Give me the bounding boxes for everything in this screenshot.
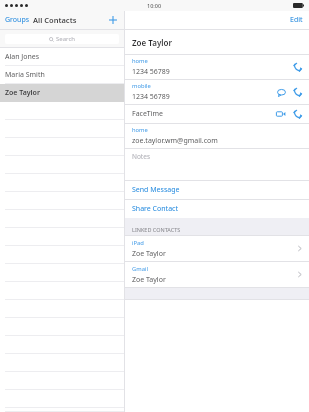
button[interactable]: Add contact (102, 14, 124, 26)
staticText: Zoe Taylor (132, 37, 172, 48)
staticText: Alan Jones (5, 52, 40, 62)
staticText: 10:00 (147, 2, 162, 9)
staticText: Search (56, 35, 75, 43)
button[interactable]: home (125, 124, 309, 148)
button[interactable]: Maria Smith (0, 66, 124, 84)
staticText: Zoe Taylor (5, 88, 40, 98)
staticText: Share Contact (132, 204, 178, 214)
button[interactable]: Search (5, 34, 119, 44)
staticText: Notes (132, 152, 150, 161)
button[interactable]: Share Contact (125, 200, 309, 218)
staticText: mobile (132, 82, 151, 90)
button[interactable]: Gmail (125, 262, 309, 287)
staticText: Send Message (132, 185, 180, 195)
button[interactable]: Call (292, 109, 302, 119)
staticText: FaceTime (132, 109, 164, 119)
staticText: Maria Smith (5, 70, 45, 80)
button[interactable]: home (125, 55, 309, 79)
staticText: 1234 56789 (132, 92, 170, 102)
staticText: iPad (132, 239, 144, 247)
button[interactable]: FaceTime video call (276, 109, 286, 119)
staticText: Zoe Taylor (132, 249, 166, 259)
button[interactable]: Alan Jones (0, 48, 124, 66)
button[interactable]: Call (292, 87, 302, 97)
button[interactable]: iPad (125, 236, 309, 261)
staticText: home (132, 126, 148, 134)
button[interactable]: Send Message (125, 181, 309, 199)
staticText: All Contacts (33, 15, 77, 25)
button[interactable]: Groups (0, 12, 35, 28)
button[interactable]: Edit (284, 12, 309, 28)
button[interactable]: Call (292, 62, 302, 72)
button[interactable]: Zoe Taylor (0, 84, 124, 102)
button[interactable]: mobile (125, 80, 309, 104)
staticText: Zoe Taylor (132, 275, 166, 285)
staticText: Edit (290, 15, 303, 25)
button[interactable]: Notes (125, 149, 309, 180)
staticText: LINKED CONTACTS (132, 226, 181, 233)
staticText: zoe.taylor.wm@gmail.com (132, 136, 218, 146)
staticText: 1234 56789 (132, 67, 170, 77)
button[interactable]: FaceTime (125, 105, 309, 123)
button[interactable]: Send message (276, 87, 286, 97)
staticText: Gmail (132, 265, 148, 273)
staticText: Groups (5, 15, 30, 25)
staticText: home (132, 57, 148, 65)
